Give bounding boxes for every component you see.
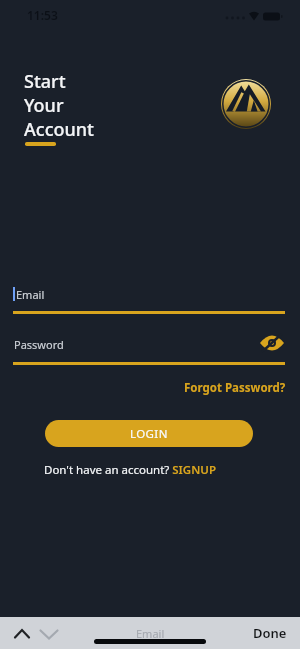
staticText: 11:53: [27, 7, 58, 23]
button[interactable]: Don't have an account? SIGNUP: [44, 462, 217, 478]
staticText: Email: [136, 626, 165, 641]
staticText: Email: [16, 287, 45, 302]
button[interactable]: [12, 621, 34, 645]
staticText: LOGIN: [130, 426, 168, 442]
button[interactable]: Done: [253, 624, 287, 642]
button[interactable]: LOGIN: [45, 420, 253, 447]
button[interactable]: [38, 621, 62, 645]
button[interactable]: [259, 333, 285, 353]
staticText: Password: [14, 337, 64, 352]
button[interactable]: Forgot Password?: [184, 380, 286, 396]
staticText: Start Your Account: [24, 69, 94, 141]
